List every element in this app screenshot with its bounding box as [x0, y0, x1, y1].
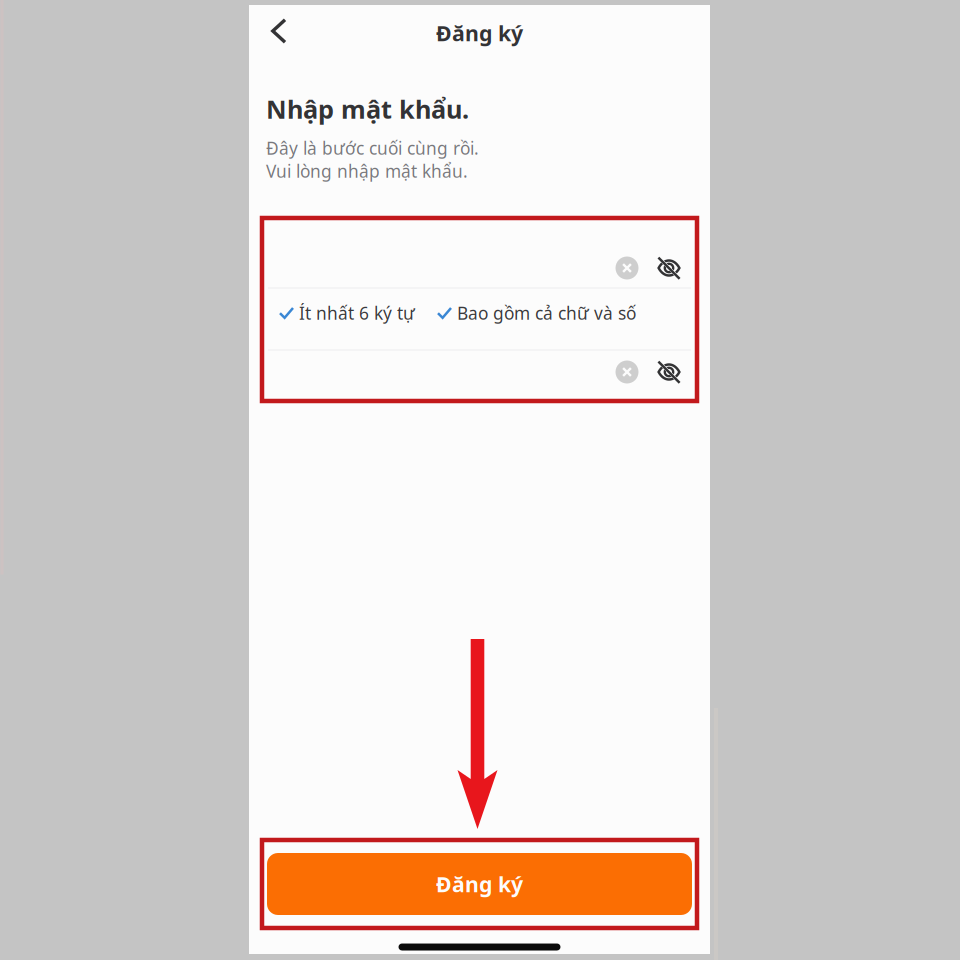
button[interactable]: Show password [649, 352, 689, 392]
staticText: Vui lòng nhập mật khẩu. [266, 159, 468, 182]
button[interactable]: Show password [649, 248, 689, 288]
button[interactable]: Nhập lại mật khẩu [262, 351, 602, 399]
button[interactable]: Back [256, 8, 302, 54]
staticText: Đăng ký [436, 19, 523, 47]
button[interactable]: Clear text [607, 352, 647, 392]
button[interactable]: Đăng ký [262, 840, 697, 928]
button[interactable]: Clear text [607, 248, 647, 288]
staticText: Nhập mật khẩu. [266, 92, 469, 126]
staticText: Ít nhất 6 ký tự [299, 301, 415, 324]
staticText: Đăng ký [436, 870, 523, 898]
staticText: Bao gồm cả chữ và số [457, 301, 636, 324]
staticText: Đây là bước cuối cùng rồi. [266, 136, 479, 159]
button[interactable]: Mật khẩu [262, 220, 602, 288]
